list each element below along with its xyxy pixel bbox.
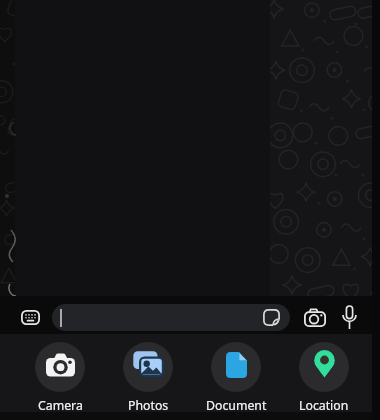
staticText: Camera bbox=[38, 397, 83, 414]
staticText: Photos bbox=[128, 397, 169, 414]
staticText: Document bbox=[206, 397, 267, 414]
button[interactable] bbox=[342, 305, 357, 331]
button[interactable]: Camera bbox=[16, 342, 104, 414]
button[interactable] bbox=[52, 304, 290, 331]
button[interactable] bbox=[304, 308, 326, 327]
button[interactable] bbox=[21, 310, 40, 325]
button[interactable] bbox=[263, 309, 280, 326]
button[interactable]: Photos bbox=[104, 342, 192, 414]
staticText: Location bbox=[299, 397, 349, 414]
button[interactable]: Document bbox=[192, 342, 280, 414]
button[interactable]: Location bbox=[280, 342, 368, 414]
